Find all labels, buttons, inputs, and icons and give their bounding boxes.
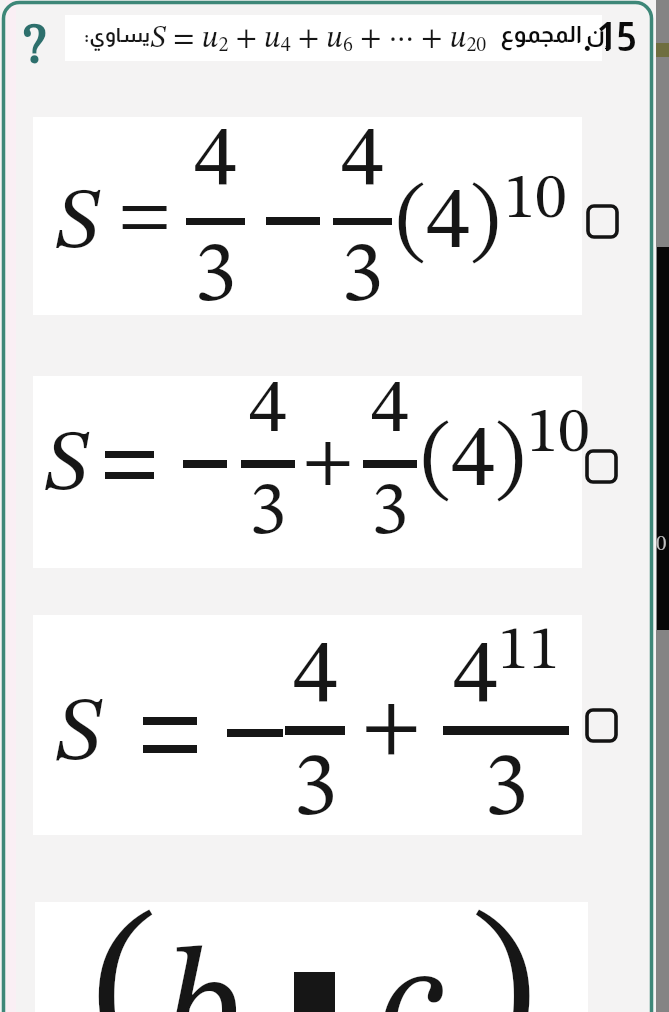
button[interactable] bbox=[585, 449, 618, 484]
staticText: إن المجموع bbox=[500, 21, 610, 47]
staticText: .15 bbox=[582, 15, 642, 60]
button[interactable] bbox=[585, 708, 618, 743]
staticText: 0 bbox=[656, 534, 667, 555]
staticText: 10 bbox=[504, 169, 567, 232]
staticText: c bbox=[378, 931, 444, 1012]
staticText: يساوي: bbox=[84, 24, 150, 46]
staticText: + bbox=[361, 687, 422, 771]
staticText: S = u2 + u4 + u6 + ··· + u20 bbox=[150, 24, 487, 56]
staticText: ) bbox=[470, 903, 536, 1012]
staticText: 4 bbox=[453, 632, 498, 722]
button[interactable]: S bbox=[33, 117, 582, 315]
staticText: (4) bbox=[421, 418, 525, 506]
staticText: 3 bbox=[194, 234, 237, 320]
staticText: (4) bbox=[396, 180, 500, 268]
staticText: + bbox=[302, 427, 354, 499]
staticText: b bbox=[162, 937, 242, 1012]
staticText: S bbox=[54, 181, 100, 267]
staticText: 11 bbox=[498, 621, 560, 683]
staticText: = bbox=[118, 181, 172, 255]
staticText: 4 bbox=[371, 373, 409, 449]
button[interactable] bbox=[586, 204, 619, 239]
staticText: 3 bbox=[249, 475, 287, 551]
staticText: 4 bbox=[293, 632, 338, 722]
staticText: S bbox=[43, 423, 89, 509]
button[interactable] bbox=[35, 902, 588, 1012]
staticText: 4 bbox=[194, 119, 237, 205]
button[interactable]: ? bbox=[23, 19, 47, 75]
staticText: 3 bbox=[484, 745, 529, 835]
staticText: S bbox=[54, 690, 103, 780]
staticText: ( bbox=[93, 903, 159, 1012]
button[interactable] bbox=[65, 15, 602, 61]
button[interactable]: S bbox=[33, 615, 582, 835]
staticText: 3 bbox=[371, 475, 409, 551]
staticText: 3 bbox=[341, 234, 384, 320]
staticText: 3 bbox=[293, 745, 338, 835]
staticText: 10 bbox=[527, 403, 590, 466]
staticText: 4 bbox=[341, 119, 384, 205]
staticText: 4 bbox=[249, 373, 287, 449]
button[interactable]: S bbox=[33, 376, 582, 568]
